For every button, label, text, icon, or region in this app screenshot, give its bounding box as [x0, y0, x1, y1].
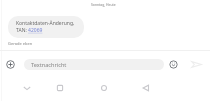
staticText: Gerade eben — [8, 41, 33, 46]
button[interactable]: Back — [139, 81, 153, 95]
staticText: Sonntag, Heute — [91, 2, 116, 7]
staticText: TAN: 42069 — [16, 27, 43, 34]
button[interactable]: Kontaktdaten-Änderung, — [8, 16, 84, 38]
staticText: Kontaktdaten-Änderung, — [16, 20, 75, 27]
button[interactable]: Recent apps — [53, 81, 67, 95]
button[interactable]: Emoji — [165, 56, 182, 73]
button[interactable]: Textnachricht — [24, 59, 164, 70]
staticText: Textnachricht — [31, 61, 67, 69]
button[interactable]: Send — [188, 56, 205, 73]
button[interactable]: Home — [97, 81, 111, 95]
button[interactable]: Add attachment — [2, 56, 19, 73]
button[interactable]: Hide keyboard — [20, 81, 34, 95]
